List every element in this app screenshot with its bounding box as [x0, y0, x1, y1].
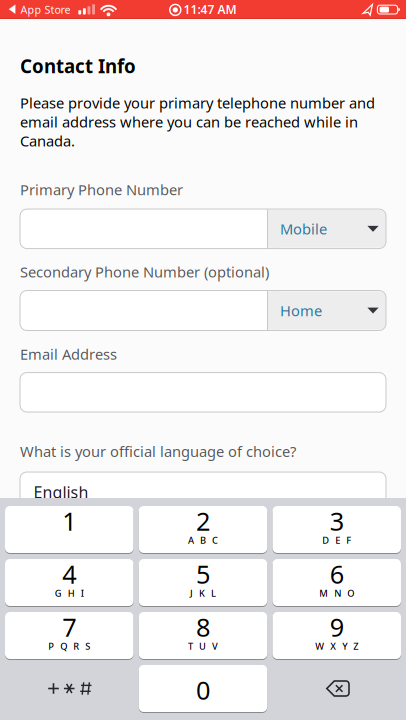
- button[interactable]: 4: [5, 559, 133, 606]
- staticText: 1: [62, 504, 76, 538]
- staticText: 5: [196, 557, 210, 591]
- staticText: 7: [62, 610, 76, 644]
- button[interactable]: 5: [139, 559, 267, 606]
- staticText: T U V: [188, 640, 218, 652]
- button[interactable]: Mobile: [267, 209, 386, 249]
- staticText: A B C: [188, 534, 218, 546]
- staticText: 2: [196, 504, 210, 538]
- button[interactable]: 9: [272, 612, 401, 659]
- staticText: email address where you can be reached w…: [20, 112, 358, 131]
- staticText: G H I: [55, 587, 84, 599]
- staticText: 6: [330, 557, 344, 591]
- button[interactable]: 3: [272, 506, 401, 553]
- button[interactable]: Home: [267, 290, 386, 330]
- staticText: Please provide your primary telephone nu…: [20, 93, 375, 112]
- staticText: What is your official language of choice…: [20, 442, 296, 461]
- staticText: App Store: [20, 2, 70, 17]
- staticText: P Q R S: [48, 640, 90, 652]
- staticText: Home: [280, 301, 322, 320]
- button[interactable]: 8: [139, 612, 267, 659]
- staticText: M N O: [319, 587, 354, 599]
- button[interactable]: 6: [272, 559, 401, 606]
- staticText: 9: [330, 610, 344, 644]
- staticText: Email Address: [20, 344, 117, 364]
- button[interactable]: App Store: [7, 0, 111, 19]
- button[interactable]: 7: [5, 612, 133, 659]
- staticText: Mobile: [280, 219, 327, 239]
- button[interactable]: More symbols: [5, 665, 133, 712]
- button[interactable]: 0: [139, 665, 267, 712]
- staticText: 0: [196, 673, 210, 707]
- staticText: D E F: [322, 534, 351, 546]
- staticText: Secondary Phone Number (optional): [20, 262, 269, 282]
- staticText: Primary Phone Number: [20, 180, 183, 199]
- staticText: 11:47 AM: [183, 1, 236, 17]
- button[interactable]: 1: [5, 506, 133, 553]
- staticText: W X Y Z: [315, 640, 358, 652]
- button[interactable]: Delete: [272, 665, 401, 712]
- staticText: 3: [330, 504, 344, 538]
- staticText: 4: [62, 557, 76, 591]
- staticText: Canada.: [20, 131, 75, 150]
- staticText: 8: [196, 610, 210, 644]
- staticText: English: [33, 481, 88, 503]
- staticText: J K L: [190, 587, 216, 599]
- staticText: Contact Info: [20, 54, 136, 78]
- button[interactable]: 2: [139, 506, 267, 553]
